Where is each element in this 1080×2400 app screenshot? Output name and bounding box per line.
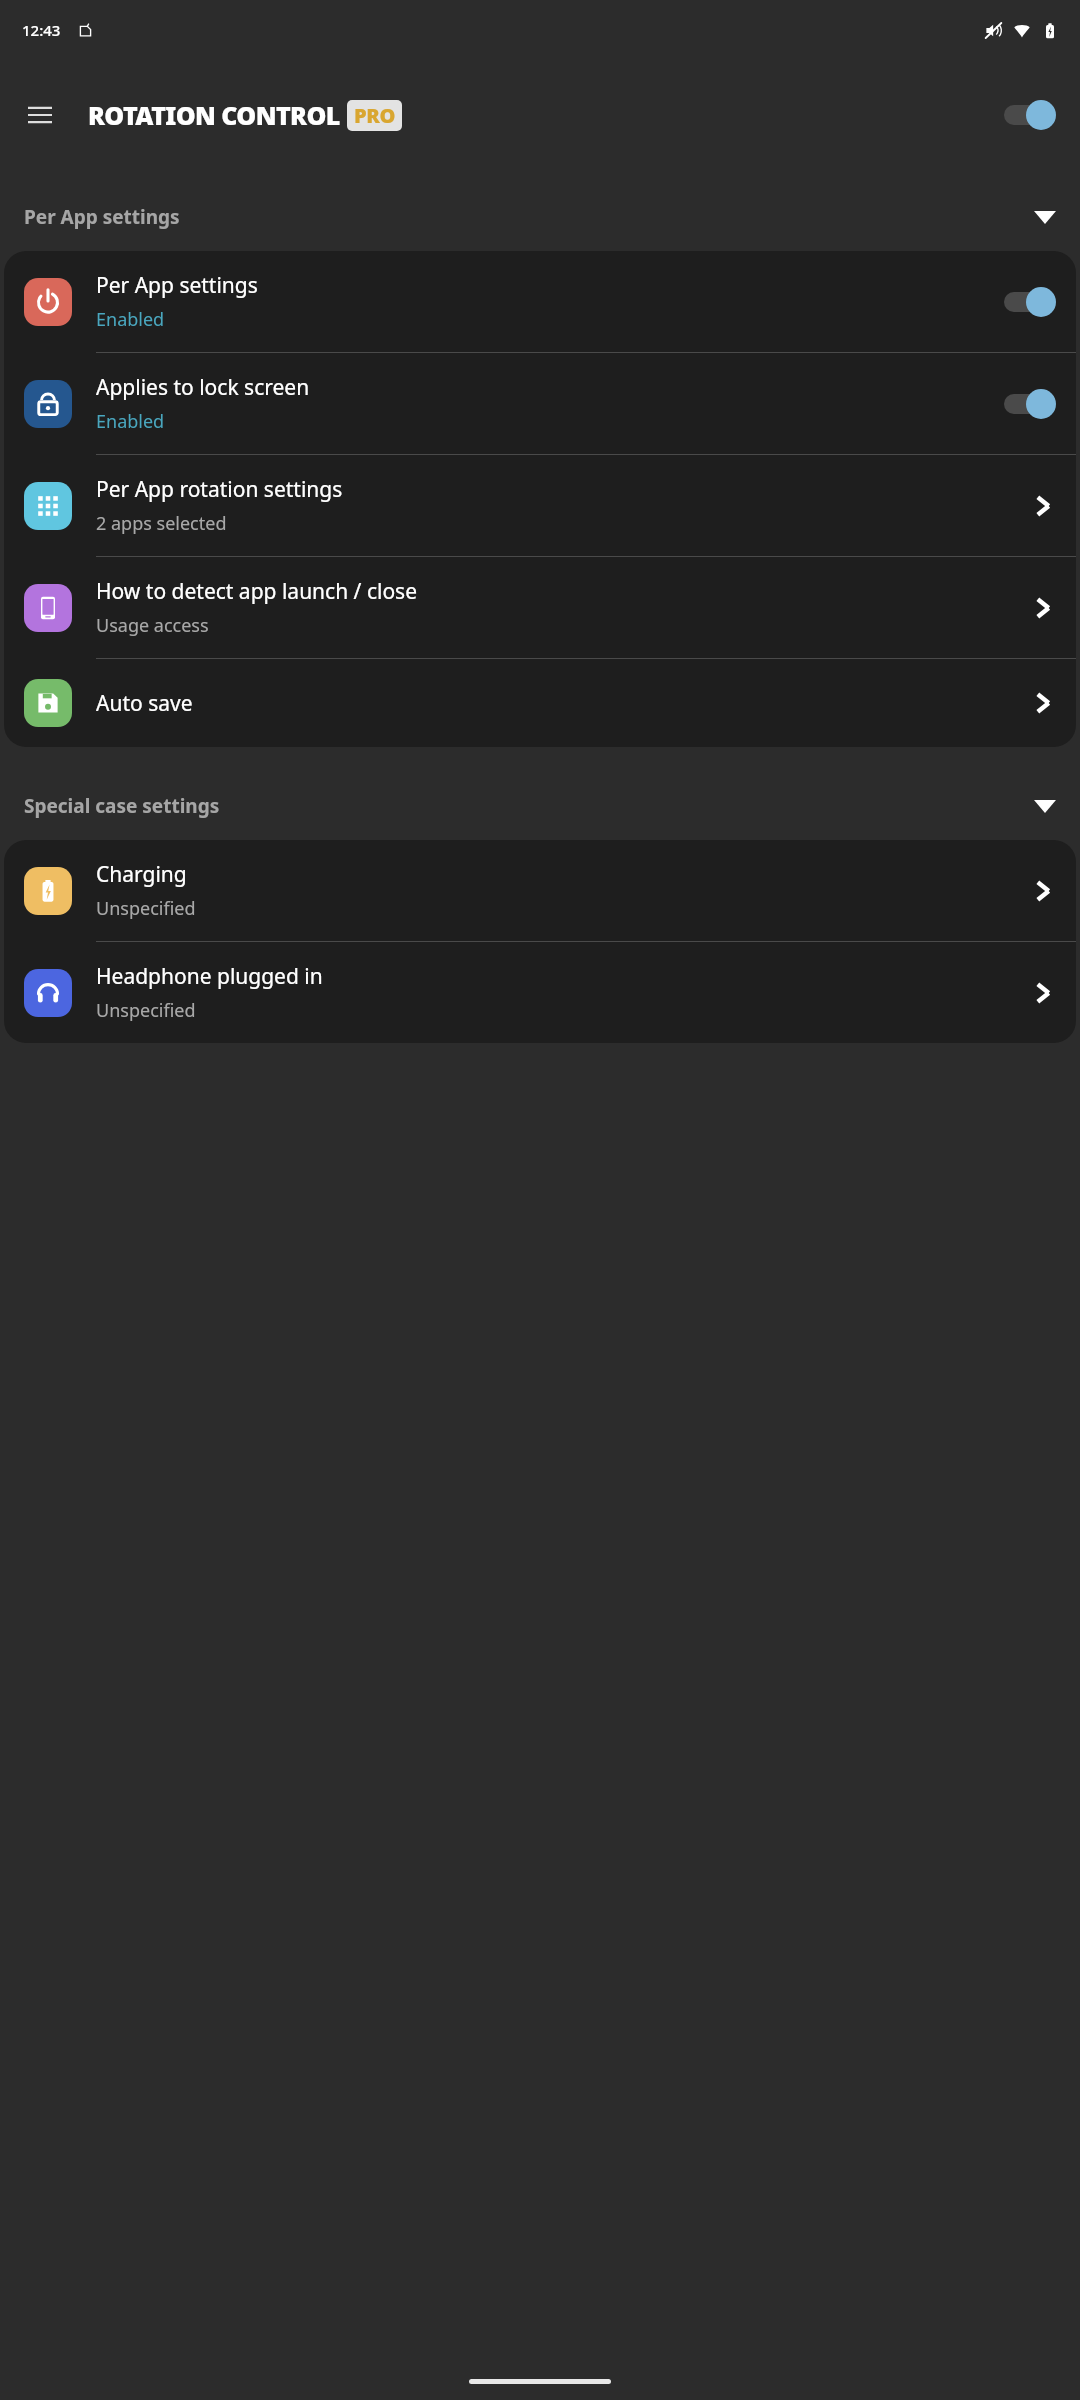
button[interactable]: Open navigation menu	[12, 87, 68, 143]
staticText: 12:43	[22, 20, 61, 40]
staticText: ROTATION CONTROL	[88, 98, 340, 132]
staticText: Charging	[96, 860, 187, 889]
staticText: 2 apps selected	[96, 511, 227, 536]
staticText: Enabled	[96, 307, 165, 332]
staticText: Unspecified	[96, 998, 196, 1023]
button[interactable]: Per App settings	[0, 196, 1080, 238]
staticText: How to detect app launch / close	[96, 577, 417, 606]
staticText: Usage access	[96, 613, 209, 638]
staticText: Per App rotation settings	[96, 475, 343, 504]
staticText: Enabled	[96, 409, 165, 434]
staticText: PRO	[354, 102, 395, 129]
button[interactable]: Auto save	[4, 659, 1076, 747]
button[interactable]: Per App settings	[4, 251, 1076, 352]
staticText: Per App settings	[24, 204, 1034, 230]
staticText: Auto save	[96, 689, 193, 718]
staticText: Unspecified	[96, 896, 196, 921]
staticText: Per App settings	[96, 271, 258, 300]
staticText: Special case settings	[24, 793, 1034, 819]
button[interactable]: Master rotation toggle	[996, 92, 1064, 138]
button[interactable]: Headphone plugged in	[4, 942, 1076, 1043]
staticText: Applies to lock screen	[96, 373, 310, 402]
button[interactable]: How to detect app launch / close	[4, 557, 1076, 658]
button[interactable]: Per App rotation settings	[4, 455, 1076, 556]
staticText: Headphone plugged in	[96, 962, 323, 991]
button[interactable]: Applies to lock screen	[4, 353, 1076, 454]
button[interactable]: Charging	[4, 840, 1076, 941]
button[interactable]: Special case settings	[0, 785, 1080, 827]
